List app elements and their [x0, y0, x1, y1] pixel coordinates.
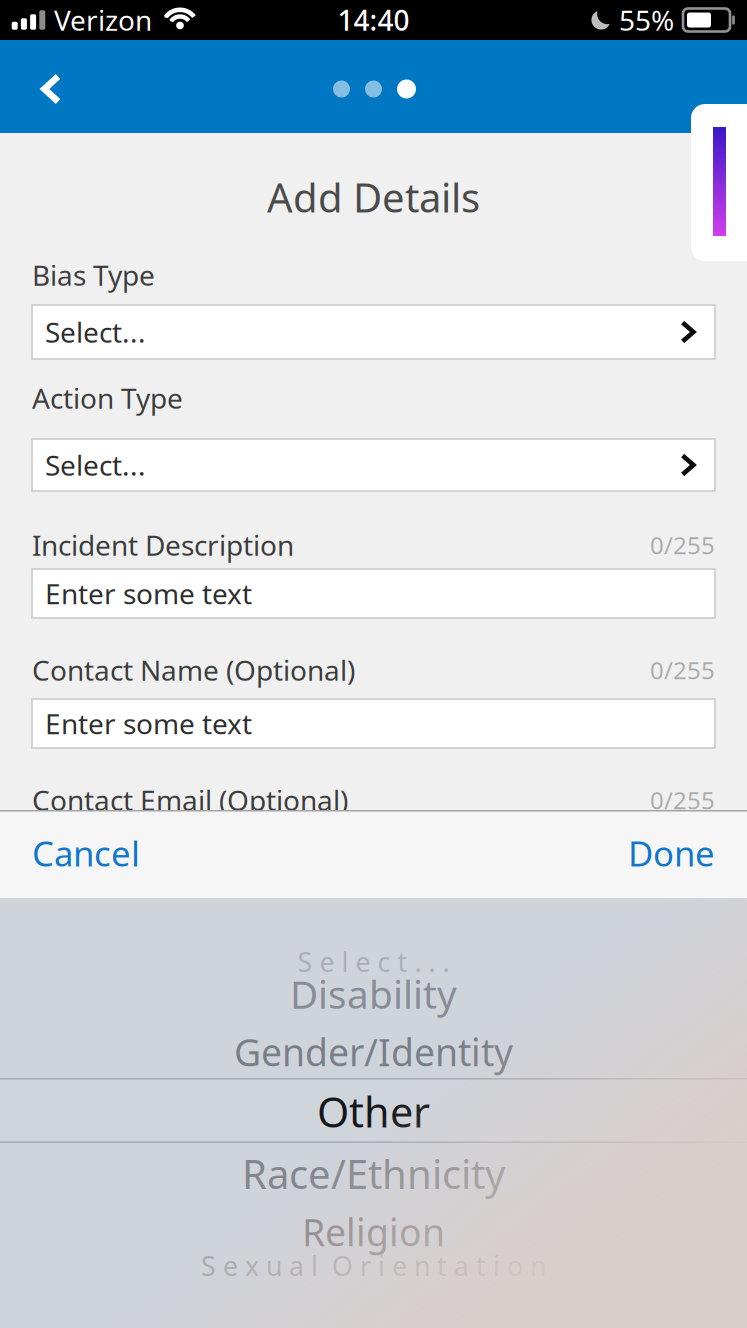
staticText: Add Details — [267, 170, 480, 223]
staticText: Enter some text — [45, 705, 252, 742]
staticText: Other — [317, 1084, 430, 1139]
staticText: Enter some text — [45, 575, 252, 612]
staticText: 55% — [619, 1, 674, 39]
staticText: Incident Description — [32, 526, 294, 564]
button[interactable]: Select... — [32, 305, 715, 359]
button[interactable]: Enter some text — [32, 699, 715, 748]
staticText: S e l e c t . . . — [297, 944, 449, 979]
staticText: Select... — [45, 446, 146, 484]
button[interactable]: Enter some text — [32, 569, 715, 618]
staticText: Done — [628, 830, 715, 876]
staticText: 0/255 — [650, 654, 715, 686]
staticText: 0/255 — [650, 784, 715, 816]
button[interactable]: Select... — [32, 439, 715, 491]
staticText: S e x u a l O r i e n t a t i o n — [201, 1248, 546, 1283]
staticText: Race/Ethnicity — [242, 1147, 505, 1200]
staticText: Religion — [302, 1207, 445, 1257]
staticText: Action Type — [32, 379, 183, 417]
staticText: Verizon — [54, 1, 152, 39]
staticText: 0/255 — [650, 529, 715, 561]
button[interactable]: Done — [624, 816, 719, 890]
button[interactable]: Cancel — [28, 816, 144, 890]
staticText: Cancel — [32, 830, 140, 876]
button[interactable]: Back — [20, 57, 82, 121]
staticText: Disability — [290, 968, 457, 1019]
staticText: Bias Type — [32, 256, 155, 294]
staticText: Select... — [45, 313, 146, 351]
staticText: Contact Email (Optional) — [32, 781, 348, 819]
staticText: Gender/Identity — [234, 1027, 513, 1077]
staticText: Contact Name (Optional) — [32, 651, 355, 689]
staticText: 14:40 — [337, 1, 409, 39]
